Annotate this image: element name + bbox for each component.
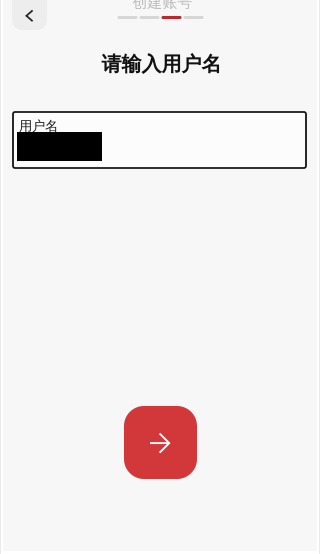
staticText: 用户名 xyxy=(19,118,58,134)
staticText: 创建账号 xyxy=(132,0,192,11)
button[interactable]: Next xyxy=(124,406,197,479)
button[interactable]: Back xyxy=(12,0,47,30)
staticText: 请输入用户名 xyxy=(101,52,221,76)
